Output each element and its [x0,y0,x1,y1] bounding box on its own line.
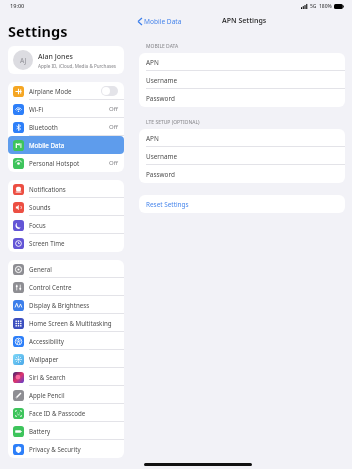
staticText: Reset Settings [146,200,189,209]
staticText: APN [146,58,159,67]
staticText: Focus [29,221,118,229]
staticText: Battery [29,427,118,435]
button[interactable]: Wi-Fi [8,100,124,118]
button[interactable]: Username [139,71,345,89]
staticText: Alan Jones [38,52,73,62]
staticText: Mobile Data [29,141,118,149]
staticText: Wallpaper [29,355,118,363]
staticText: Username [146,76,178,85]
button[interactable]: APN [139,53,345,71]
staticText: Airplane Mode [29,87,101,95]
staticText: APN Settings [222,16,267,26]
staticText: LTE SETUP (OPTIONAL) [146,119,200,126]
button[interactable]: Battery [8,422,124,440]
staticText: Password [146,170,175,179]
button[interactable]: Mobile Data [132,14,188,29]
staticText: Bluetooth [29,123,109,131]
button[interactable]: APN [139,129,345,147]
button[interactable]: Accessibility [8,332,124,350]
staticText: Siri & Search [29,373,118,381]
button[interactable]: Siri & Search [8,368,124,386]
button[interactable]: Airplane Mode toggle [101,86,118,96]
staticText: Home Screen & Multitasking [29,319,118,327]
button[interactable]: Password [139,89,345,107]
staticText: Sounds [29,203,118,211]
button[interactable]: Bluetooth [8,118,124,136]
button[interactable]: Notifications [8,180,124,198]
staticText: 5G [310,3,317,10]
button[interactable]: Sounds [8,198,124,216]
staticText: 180% [319,3,332,10]
staticText: Username [146,152,178,161]
staticText: Off [109,105,118,113]
button[interactable]: Personal Hotspot [8,154,124,172]
staticText: AJ [20,56,27,65]
staticText: Off [109,123,118,131]
staticText: Face ID & Passcode [29,409,118,417]
button[interactable]: Focus [8,216,124,234]
staticText: MOBILE DATA [146,43,179,50]
button[interactable]: Control Centre [8,278,124,296]
button[interactable]: Privacy & Security [8,440,124,458]
button[interactable]: Mobile Data [8,136,124,154]
staticText: Apple Pencil [29,391,118,399]
staticText: Screen Time [29,239,118,247]
staticText: General [29,265,118,273]
staticText: Off [109,159,118,167]
button[interactable]: Apple Pencil [8,386,124,404]
button[interactable]: Wallpaper [8,350,124,368]
staticText: Wi-Fi [29,105,109,113]
button[interactable]: Display & Brightness [8,296,124,314]
staticText: Accessibility [29,337,118,345]
button[interactable]: Reset Settings [139,195,345,213]
staticText: 19:00 [10,2,25,10]
staticText: Display & Brightness [29,301,118,309]
button[interactable]: Password [139,165,345,183]
button[interactable]: Username [139,147,345,165]
button[interactable]: Home Screen & Multitasking [8,314,124,332]
button[interactable]: Face ID & Passcode [8,404,124,422]
button[interactable]: AJ [8,46,124,74]
staticText: Privacy & Security [29,445,118,453]
staticText: Password [146,94,175,103]
button[interactable]: Airplane Mode [8,82,124,100]
staticText: Control Centre [29,283,118,291]
staticText: APN [146,134,159,143]
button[interactable]: Screen Time [8,234,124,252]
staticText: Personal Hotspot [29,159,109,167]
button[interactable]: General [8,260,124,278]
staticText: Notifications [29,185,118,193]
staticText: Apple ID, iCloud, Media & Purchases [38,63,116,69]
staticText: Mobile Data [144,17,182,26]
staticText: Settings [8,21,68,41]
